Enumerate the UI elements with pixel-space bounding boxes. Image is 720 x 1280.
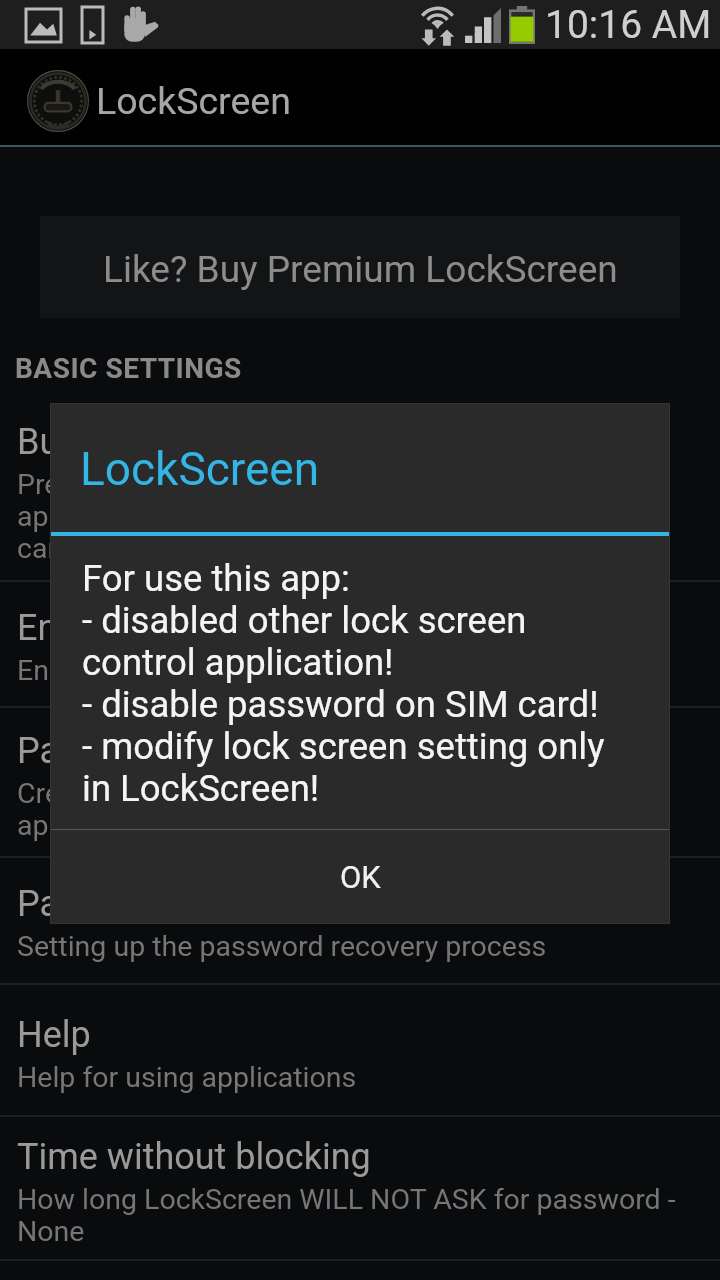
button[interactable]: Enable: [0, 582, 720, 708]
button[interactable]: Password: [0, 708, 720, 858]
staticText: Help: [17, 1014, 91, 1056]
staticText: Setting up the password recovery process: [17, 931, 547, 963]
button[interactable]: Like? Buy Premium LockScreen: [40, 216, 680, 318]
staticText: For use this app: - disabled other lock …: [82, 558, 605, 810]
button[interactable]: Password recovery: [0, 858, 720, 985]
other: App icon: [26, 69, 90, 133]
button[interactable]: OK: [50, 830, 670, 924]
staticText: How long LockScreen WILL NOT ASK for pas…: [17, 1184, 706, 1248]
staticText: Button: [17, 421, 123, 463]
staticText: Like? Buy Premium LockScreen: [103, 248, 618, 291]
staticText: LockScreen: [80, 442, 320, 496]
staticText: Time without blocking: [17, 1136, 371, 1178]
staticText: Password: [17, 730, 177, 772]
staticText: BASIC SETTINGS: [15, 352, 242, 385]
staticText: LockScreen: [96, 79, 291, 123]
button[interactable]: Help: [0, 985, 720, 1117]
staticText: Help for using applications: [17, 1062, 357, 1094]
staticText: 10:16 AM: [545, 2, 712, 48]
staticText: Create a password on the application: [17, 778, 340, 842]
staticText: Enable: [17, 607, 125, 649]
staticText: Enable: [17, 655, 103, 687]
staticText: Press button on the application to unloc…: [17, 469, 328, 565]
button[interactable]: Button: [0, 394, 720, 582]
staticText: OK: [340, 859, 381, 895]
staticText: Password recovery: [17, 883, 321, 925]
button[interactable]: Time without blocking: [0, 1117, 720, 1261]
